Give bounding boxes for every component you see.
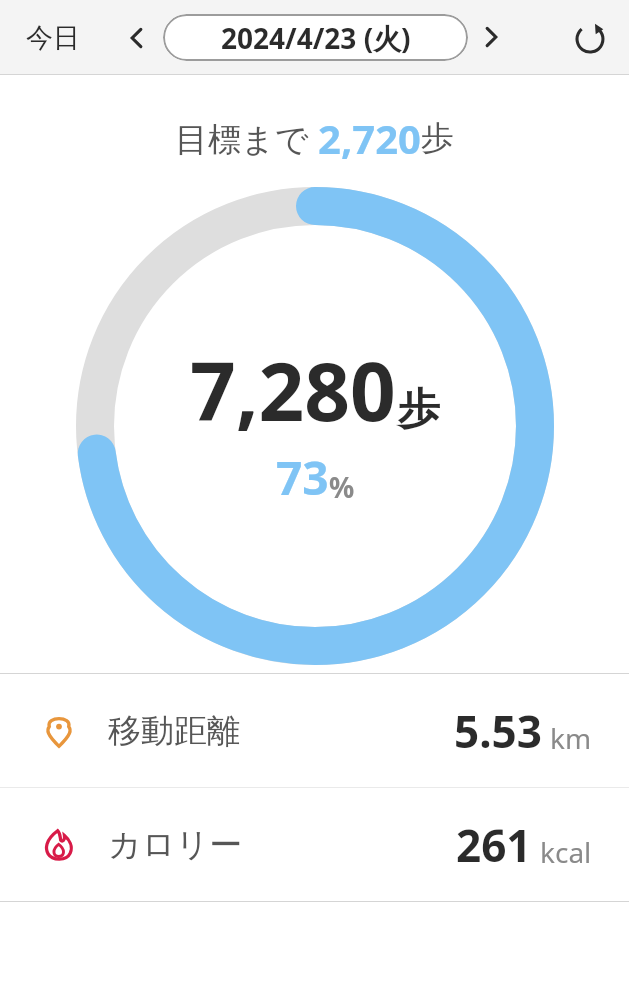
staticText: 目標まで xyxy=(175,116,318,161)
button[interactable]: Previous day xyxy=(114,15,160,61)
staticText: 7,280 xyxy=(190,335,396,444)
button[interactable]: 移動距離 xyxy=(0,674,629,787)
button[interactable]: 今日 xyxy=(14,11,92,65)
staticText: km xyxy=(550,719,592,757)
staticText: 歩 xyxy=(398,383,440,436)
button[interactable]: Refresh xyxy=(563,11,617,65)
staticText: 歩 xyxy=(421,117,454,159)
button[interactable]: カロリー xyxy=(0,788,629,901)
button[interactable]: 2024/4/23 (火) xyxy=(163,14,468,61)
staticText: 今日 xyxy=(26,21,80,55)
staticText: 2,720 xyxy=(318,111,421,165)
staticText: 2024/4/23 (火) xyxy=(221,19,411,57)
staticText: カロリー xyxy=(108,824,243,866)
staticText: 73 xyxy=(276,446,329,509)
staticText: 移動距離 xyxy=(108,710,240,752)
staticText: kcal xyxy=(540,833,592,871)
staticText: 261 xyxy=(456,815,532,875)
button[interactable]: Next day xyxy=(468,14,514,60)
staticText: % xyxy=(329,468,355,506)
staticText: 5.53 xyxy=(454,701,542,761)
